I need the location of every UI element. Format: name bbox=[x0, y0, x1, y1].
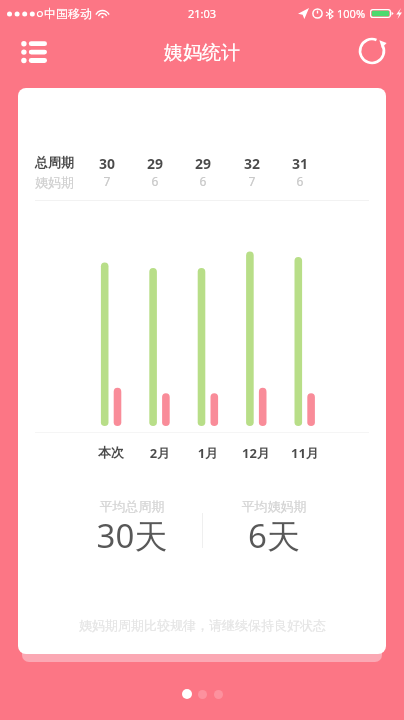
staticText: 1月 bbox=[183, 444, 233, 462]
staticText: 本次 bbox=[86, 444, 136, 460]
staticText: 姨妈统计 bbox=[164, 41, 240, 65]
staticText: 21:03 bbox=[188, 6, 217, 21]
staticText: 6 bbox=[280, 173, 320, 189]
staticText: 中国移动 bbox=[44, 6, 92, 21]
staticText: 平均总周期 bbox=[82, 498, 182, 514]
staticText: 总周期 bbox=[35, 154, 74, 170]
staticText: 姨妈期周期比较规律，请继续保持良好状态 bbox=[79, 617, 326, 633]
staticText: 11月 bbox=[280, 444, 330, 462]
staticText: 平均姨妈期 bbox=[224, 498, 324, 514]
staticText: 100% bbox=[337, 6, 366, 21]
staticText: 32 bbox=[232, 154, 272, 173]
staticText: 6天 bbox=[214, 513, 334, 558]
staticText: 29 bbox=[183, 154, 223, 173]
staticText: 2月 bbox=[135, 444, 185, 462]
staticText: 29 bbox=[135, 154, 175, 173]
button[interactable]: Menu bbox=[14, 32, 54, 72]
staticText: 31 bbox=[280, 154, 320, 173]
staticText: 6 bbox=[183, 173, 223, 189]
button[interactable]: Refresh bbox=[352, 31, 392, 71]
staticText: 30天 bbox=[72, 513, 192, 558]
staticText: 7 bbox=[232, 173, 272, 189]
staticText: 30 bbox=[87, 154, 127, 173]
staticText: 姨妈期 bbox=[35, 174, 74, 190]
staticText: 6 bbox=[135, 173, 175, 189]
staticText: 12月 bbox=[231, 444, 281, 462]
staticText: 7 bbox=[87, 173, 127, 189]
